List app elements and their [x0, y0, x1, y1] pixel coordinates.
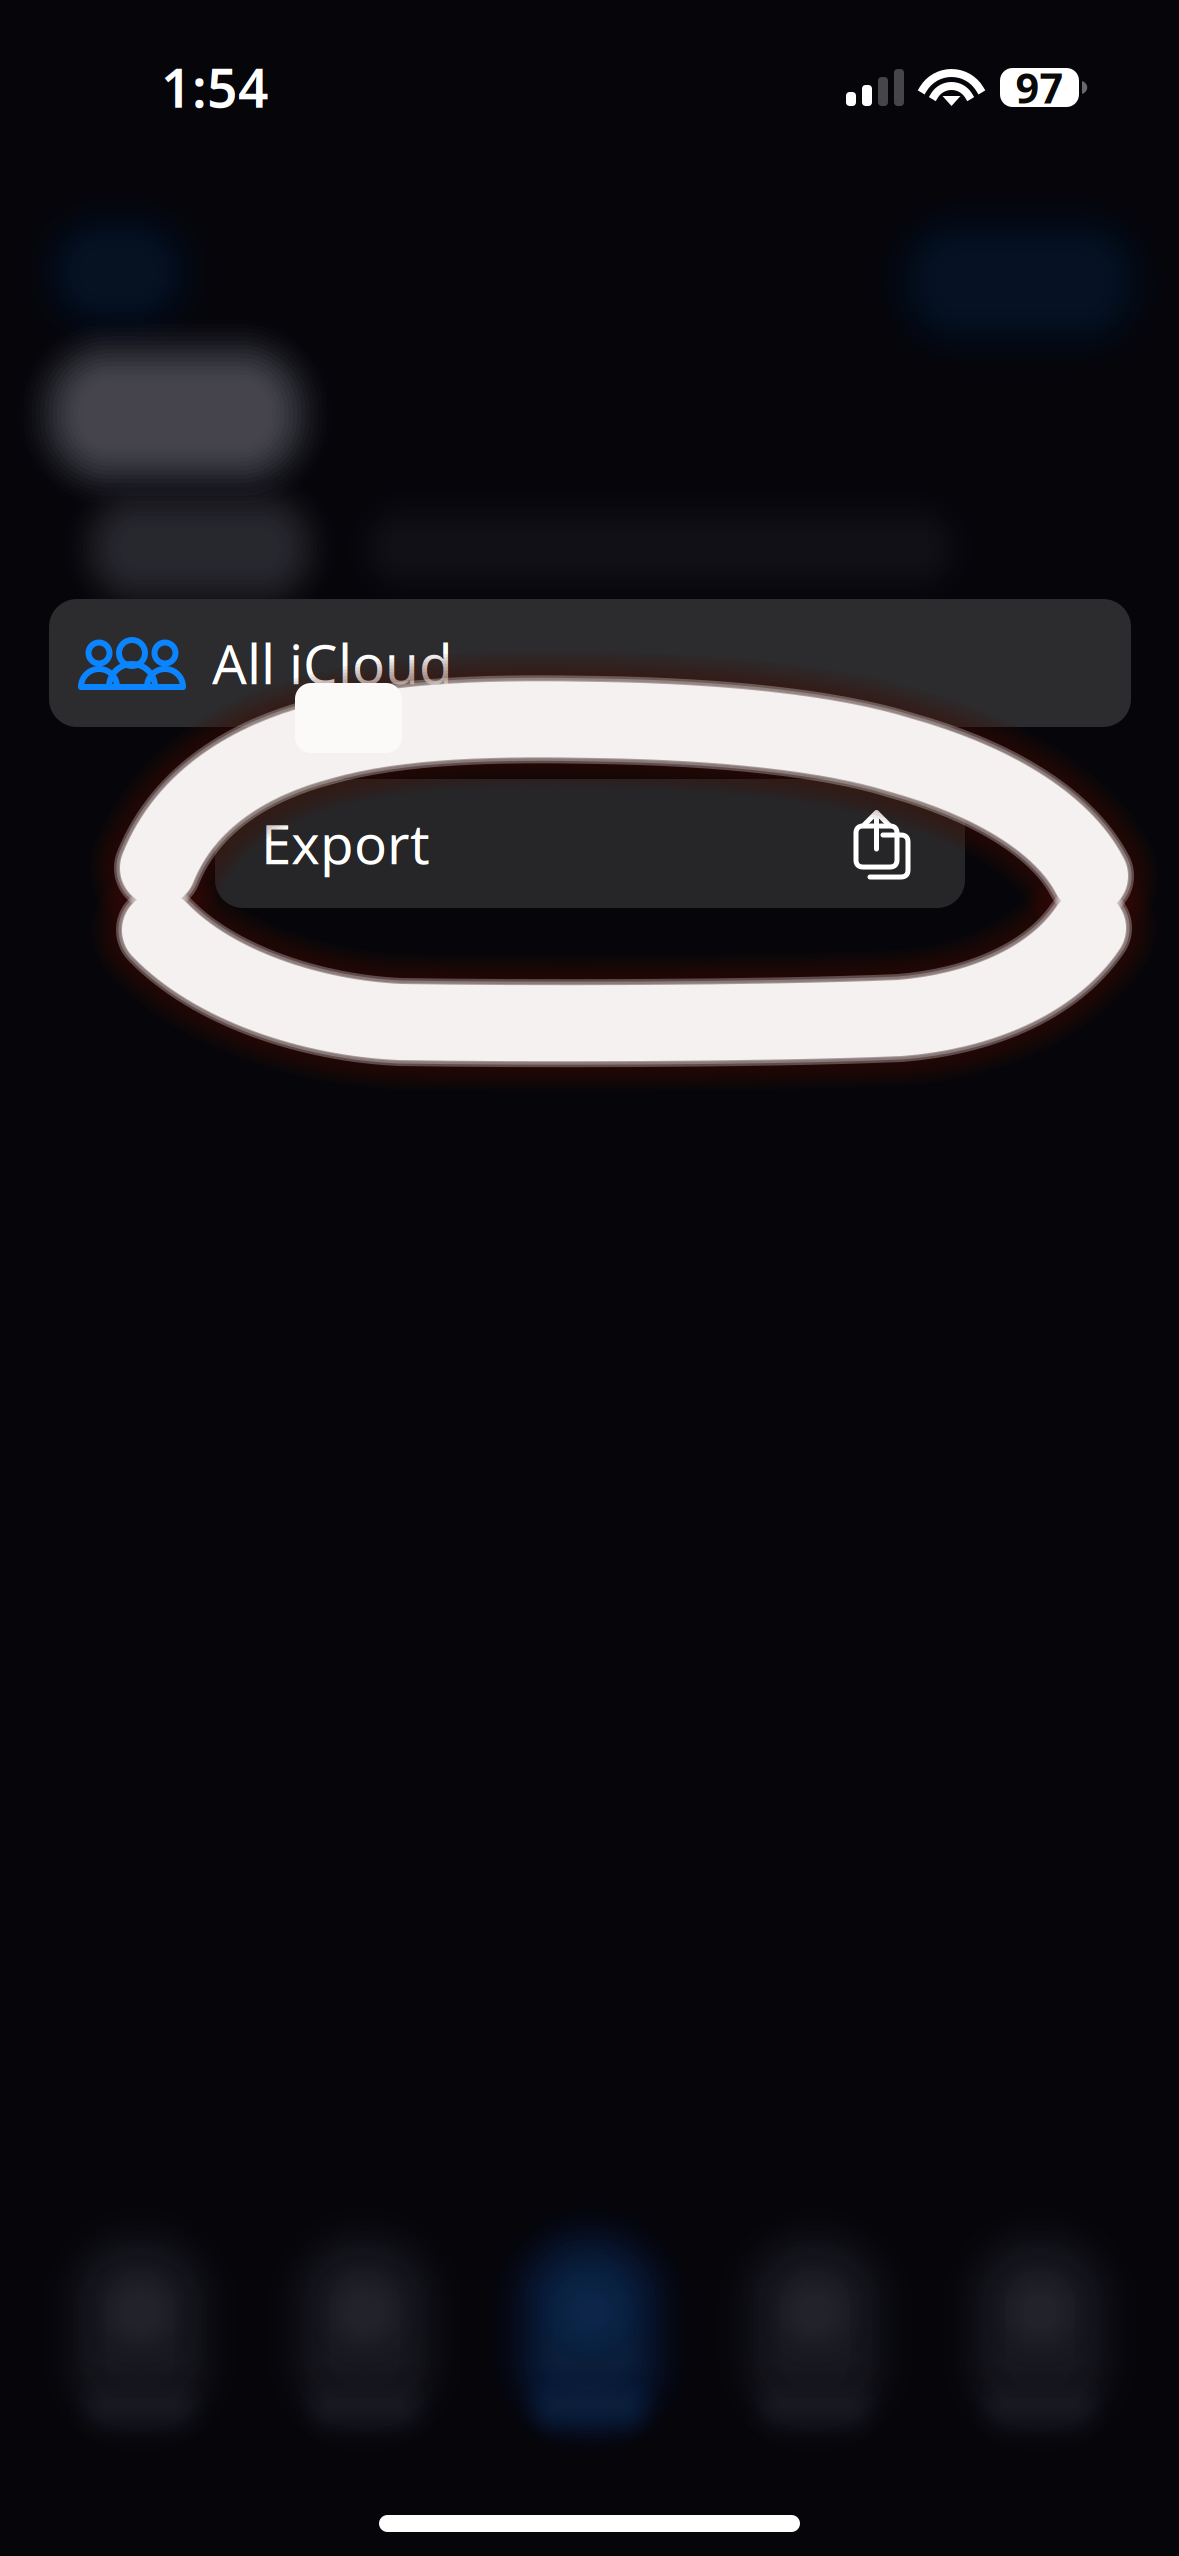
staticText: 1:54	[161, 52, 269, 122]
staticText: All iCloud	[212, 627, 453, 699]
staticText: Export	[261, 807, 430, 879]
staticText: 97	[1015, 60, 1063, 115]
button[interactable]: All iCloud	[49, 599, 1131, 727]
button[interactable]: Export	[215, 779, 965, 908]
